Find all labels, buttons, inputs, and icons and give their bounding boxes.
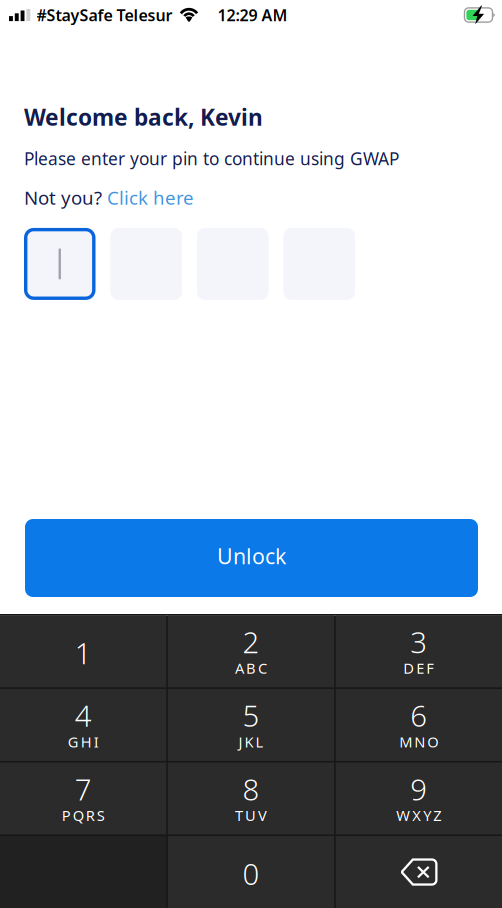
staticText: Not you?	[24, 185, 107, 210]
button[interactable]: 9	[336, 762, 502, 834]
button[interactable]: 5	[168, 689, 334, 761]
staticText: P Q R S	[62, 805, 105, 825]
staticText: 6	[410, 696, 427, 735]
staticText: 7	[75, 769, 92, 808]
staticText: J K L	[238, 732, 263, 751]
staticText: 2	[242, 622, 259, 661]
staticText: A B C	[235, 658, 267, 678]
staticText: 5	[242, 696, 259, 735]
staticText: 12:29 AM	[217, 4, 287, 26]
staticText: M N O	[399, 732, 438, 751]
staticText: Click here	[107, 185, 194, 210]
staticText: D E F	[403, 658, 434, 678]
staticText: 9	[410, 769, 427, 808]
staticText: W X Y Z	[396, 805, 441, 825]
button[interactable]: 0	[168, 836, 334, 908]
button[interactable]: 4	[0, 689, 166, 761]
staticText: G H I	[68, 732, 99, 751]
button[interactable]: 1	[0, 615, 166, 687]
button[interactable]: 7	[0, 762, 166, 834]
staticText: Welcome back, Kevin	[24, 102, 263, 132]
button[interactable]: 3	[336, 615, 502, 687]
button[interactable]: Unlock	[25, 519, 478, 597]
staticText: 0	[242, 854, 259, 893]
staticText: 3	[410, 622, 427, 661]
staticText: 1	[75, 633, 92, 672]
staticText: 4	[75, 696, 92, 735]
staticText: #StaySafe Telesur	[36, 4, 172, 26]
staticText: T U V	[235, 805, 267, 825]
button[interactable]: Click here	[107, 185, 194, 210]
button[interactable]: 6	[336, 689, 502, 761]
staticText: Unlock	[217, 542, 286, 570]
button[interactable]: 8	[168, 762, 334, 834]
staticText: 8	[242, 769, 259, 808]
staticText: Please enter your pin to continue using …	[24, 147, 399, 170]
button[interactable]: 2	[168, 615, 334, 687]
button[interactable]: Delete	[336, 836, 502, 908]
